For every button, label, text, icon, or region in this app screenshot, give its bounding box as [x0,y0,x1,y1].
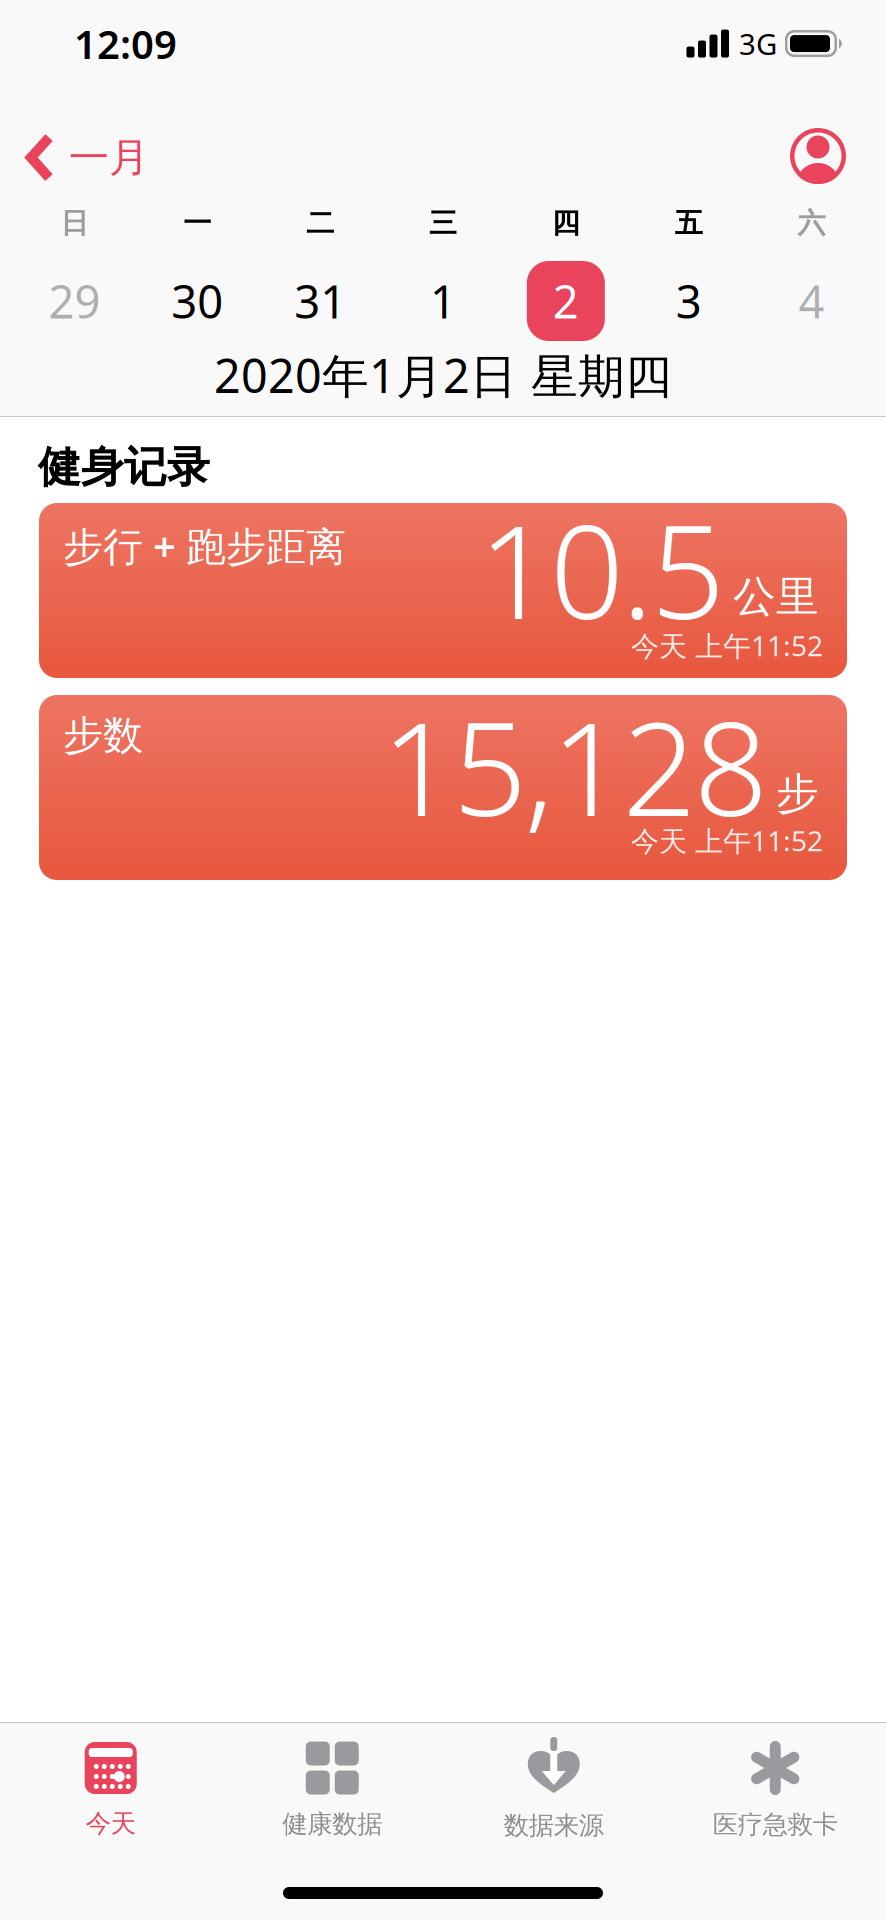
button[interactable] [790,128,846,184]
staticText: 今天 上午11:52 [631,822,823,859]
staticText: 2 [553,271,579,331]
staticText: 2020年1月2日 星期四 [214,344,672,406]
staticText: 3G [739,24,777,63]
staticText: 10.5 [478,483,725,655]
button[interactable]: 医疗急救卡 [664,1741,886,1840]
staticText: 今天 [86,1808,136,1839]
button[interactable]: 2 [504,261,627,341]
staticText: 31 [294,271,346,331]
button[interactable]: 4 [750,271,873,331]
staticText: 15,128 [381,680,768,852]
staticText: 步 [776,768,819,820]
staticText: 数据来源 [504,1810,604,1841]
staticText: 三 [429,206,457,240]
staticText: 3 [676,271,702,331]
staticText: 12:09 [74,17,177,70]
button[interactable]: 3 [627,271,750,331]
button[interactable]: 29 [13,271,136,331]
staticText: 日 [60,206,88,240]
staticText: 二 [306,206,334,240]
staticText: 六 [798,206,826,240]
button[interactable]: 1 [382,271,504,331]
staticText: 步行 + 跑步距离 [63,519,346,572]
staticText: 健康数据 [282,1808,382,1840]
staticText: 五 [675,206,703,240]
staticText: 一月 [69,133,149,182]
button[interactable]: 一月 [25,133,149,182]
staticText: 4 [799,271,825,331]
staticText: 29 [48,271,100,331]
button[interactable]: 健康数据 [221,1741,443,1840]
button[interactable]: 数据来源 [443,1740,664,1841]
staticText: 步数 [63,711,143,760]
staticText: 公里 [733,571,819,623]
staticText: 1 [430,271,456,331]
staticText: 30 [171,271,223,331]
staticText: 四 [552,206,580,240]
staticText: 一 [183,206,211,240]
button[interactable]: 今天 [0,1742,221,1839]
button[interactable]: 30 [136,271,259,331]
staticText: 今天 上午11:52 [631,627,823,664]
button[interactable]: 步行 + 跑步距离 [39,503,847,678]
button[interactable]: 步数 [39,695,847,880]
staticText: 医疗急救卡 [713,1809,838,1840]
staticText: 健身记录 [38,441,210,493]
button[interactable]: 31 [259,271,382,331]
